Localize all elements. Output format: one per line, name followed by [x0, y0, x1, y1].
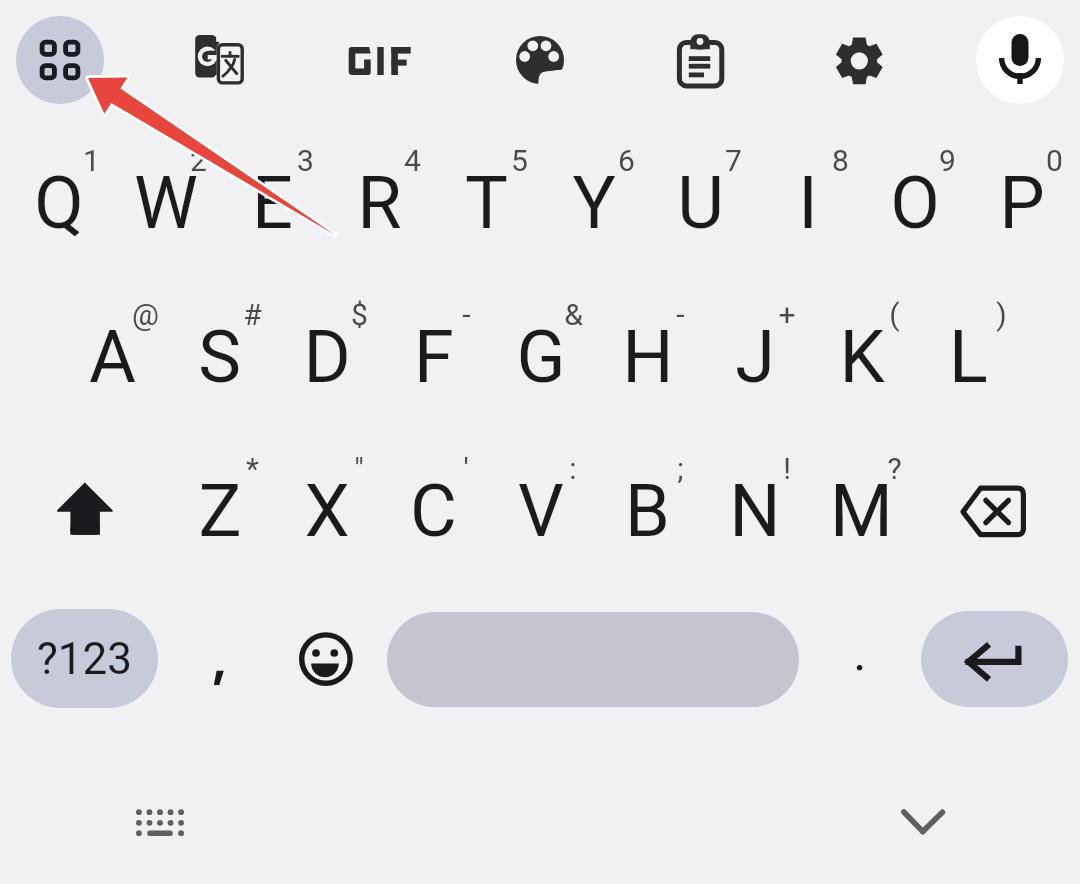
staticText: I: [798, 161, 818, 245]
staticText: ": [354, 451, 364, 486]
staticText: -: [462, 297, 471, 332]
staticText: A: [89, 315, 136, 399]
staticText: (: [889, 297, 900, 332]
button[interactable]: B: [594, 434, 701, 584]
staticText: X: [304, 469, 350, 553]
staticText: M: [830, 469, 893, 553]
staticText: ': [463, 451, 469, 486]
button[interactable]: Q: [5, 126, 112, 276]
staticText: R: [357, 161, 402, 245]
staticText: V: [518, 469, 564, 553]
button[interactable]: M: [808, 434, 915, 584]
staticText: $: [351, 297, 368, 332]
button[interactable]: G: [487, 280, 594, 430]
staticText: ?: [887, 451, 902, 486]
staticText: H: [622, 315, 674, 399]
button[interactable]: D: [273, 280, 380, 430]
staticText: 7: [725, 143, 742, 178]
staticText: 2: [190, 143, 207, 178]
button[interactable]: Open apps: [16, 16, 104, 104]
staticText: 6: [618, 143, 635, 178]
button[interactable]: X: [273, 434, 380, 584]
staticText: *: [246, 451, 259, 486]
button[interactable]: F: [380, 280, 487, 430]
staticText: B: [625, 469, 670, 553]
staticText: Y: [572, 161, 616, 245]
button[interactable]: V: [487, 434, 594, 584]
button[interactable]: Voice input: [976, 16, 1064, 104]
staticText: 9: [939, 143, 956, 178]
staticText: Z: [198, 469, 242, 553]
button[interactable]: ?123: [11, 609, 158, 708]
button[interactable]: Enter: [921, 611, 1068, 707]
staticText: 4: [404, 143, 421, 178]
button[interactable]: N: [701, 434, 808, 584]
staticText: D: [303, 315, 351, 399]
staticText: ): [996, 297, 1007, 332]
button[interactable]: Change keyboard: [125, 782, 195, 862]
staticText: E: [252, 161, 293, 245]
staticText: 0: [1046, 143, 1063, 178]
staticText: J: [735, 315, 775, 399]
staticText: -: [676, 297, 685, 332]
staticText: 1: [83, 143, 100, 178]
button[interactable]: Settings: [815, 16, 905, 104]
staticText: ?123: [37, 633, 132, 685]
staticText: K: [839, 315, 885, 399]
staticText: ;: [677, 451, 684, 486]
staticText: :: [569, 451, 577, 486]
button[interactable]: Z: [166, 434, 273, 584]
button[interactable]: GIF: [325, 16, 435, 104]
button[interactable]: Shift: [30, 455, 140, 563]
button[interactable]: C: [380, 434, 487, 584]
staticText: &: [564, 297, 583, 332]
button[interactable]: Emoji: [281, 609, 371, 708]
button[interactable]: L: [915, 280, 1022, 430]
button[interactable]: Space: [387, 612, 799, 707]
button[interactable]: T: [433, 126, 540, 276]
staticText: F: [414, 315, 454, 399]
staticText: 3: [297, 143, 314, 178]
button[interactable]: .: [815, 609, 905, 708]
staticText: W: [134, 161, 198, 245]
button[interactable]: Translate: [170, 20, 280, 110]
button[interactable]: K: [808, 280, 915, 430]
staticText: L: [949, 315, 988, 399]
staticText: C: [410, 469, 457, 553]
button[interactable]: Themes: [495, 16, 585, 104]
staticText: Q: [34, 161, 84, 245]
button[interactable]: H: [594, 280, 701, 430]
button[interactable]: Comma: [175, 609, 275, 708]
staticText: @: [132, 297, 159, 332]
button[interactable]: W: [112, 126, 219, 276]
staticText: P: [999, 161, 1045, 245]
button[interactable]: Y: [540, 126, 647, 276]
staticText: S: [198, 315, 241, 399]
staticText: U: [677, 161, 724, 245]
staticText: T: [465, 161, 508, 245]
staticText: !: [783, 451, 791, 486]
staticText: G: [516, 315, 566, 399]
button[interactable]: Backspace: [940, 455, 1050, 563]
button[interactable]: Clipboard: [655, 16, 745, 104]
button[interactable]: S: [166, 280, 273, 430]
staticText: O: [890, 161, 940, 245]
button[interactable]: E: [219, 126, 326, 276]
button[interactable]: I: [754, 126, 861, 276]
button[interactable]: O: [861, 126, 968, 276]
staticText: 8: [832, 143, 849, 178]
staticText: .: [853, 622, 867, 683]
button[interactable]: A: [59, 280, 166, 430]
button[interactable]: Hide keyboard: [888, 782, 958, 862]
staticText: #: [243, 297, 262, 332]
staticText: +: [778, 297, 796, 332]
staticText: N: [729, 469, 781, 553]
button[interactable]: P: [968, 126, 1075, 276]
staticText: 5: [511, 143, 528, 178]
button[interactable]: J: [701, 280, 808, 430]
button[interactable]: U: [647, 126, 754, 276]
button[interactable]: R: [326, 126, 433, 276]
